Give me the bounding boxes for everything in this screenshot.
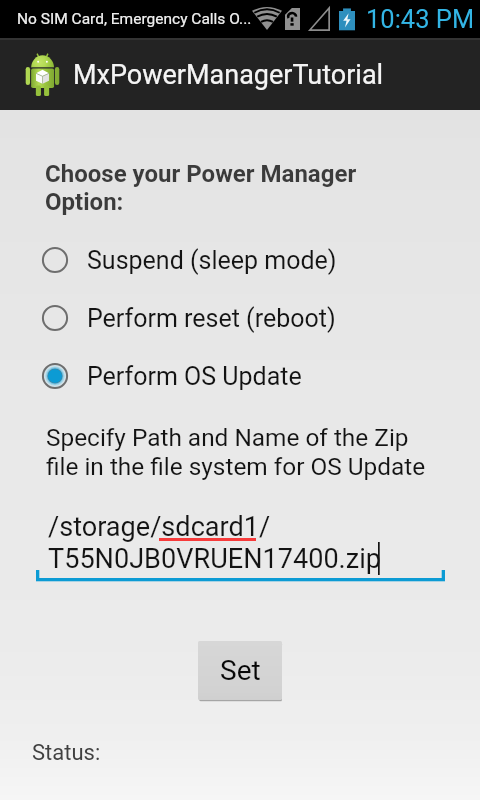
staticText: No SIM Card, Emergency Calls O... bbox=[17, 10, 252, 28]
staticText: 10:43 PM bbox=[366, 4, 472, 34]
staticText: Choose your Power Manager Option: bbox=[45, 160, 357, 216]
staticText: Perform OS Update bbox=[87, 362, 302, 391]
button[interactable]: Perform OS Update bbox=[34, 354, 434, 398]
staticText: MxPowerManagerTutorial bbox=[73, 59, 384, 91]
button[interactable]: Zip file path input field bbox=[36, 497, 445, 585]
staticText: Perform reset (reboot) bbox=[87, 304, 336, 333]
staticText: Status: bbox=[32, 740, 101, 766]
button[interactable]: Perform reset (reboot) bbox=[34, 296, 434, 340]
staticText: /storage/sdcard1/ T55N0JB0VRUEN17400.zip bbox=[48, 511, 381, 574]
staticText: Set bbox=[220, 654, 261, 687]
button[interactable]: Set bbox=[198, 641, 282, 700]
staticText: Suspend (sleep mode) bbox=[87, 246, 337, 275]
button[interactable]: Suspend (sleep mode) bbox=[34, 238, 434, 282]
button[interactable]: MxPowerManagerTutorial bbox=[0, 38, 480, 110]
staticText: Specify Path and Name of the Zip file in… bbox=[46, 423, 426, 481]
